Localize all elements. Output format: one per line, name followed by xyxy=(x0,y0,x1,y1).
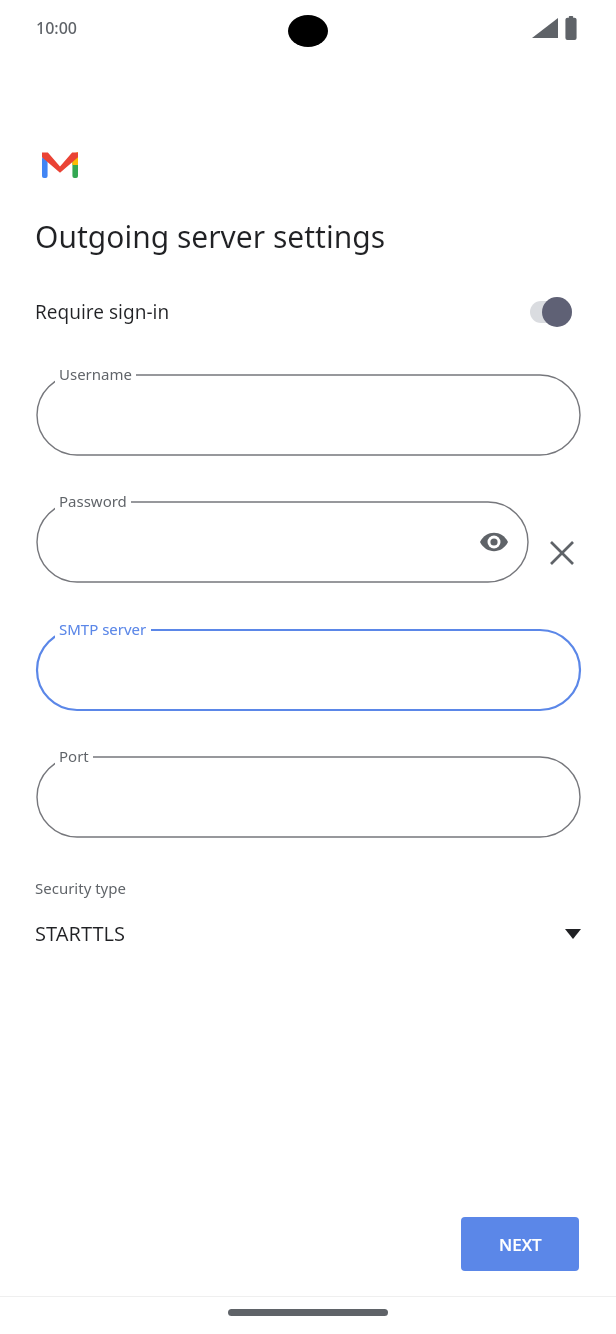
button[interactable]: SMTP server xyxy=(37,630,580,710)
button[interactable]: Password xyxy=(37,502,528,582)
staticText: Require sign-in xyxy=(35,299,170,325)
button[interactable]: Clear password xyxy=(540,531,584,575)
staticText: Port xyxy=(59,746,89,766)
staticText: NEXT xyxy=(499,1233,542,1256)
staticText: 10:00 xyxy=(36,17,77,39)
button[interactable]: NEXT xyxy=(461,1217,579,1271)
staticText: Password xyxy=(59,491,127,511)
button[interactable]: Security type xyxy=(0,868,616,961)
button[interactable]: Require sign-in xyxy=(0,286,616,338)
button[interactable]: Show password xyxy=(472,520,516,564)
button[interactable]: Username xyxy=(37,375,580,455)
staticText: SMTP server xyxy=(59,619,147,639)
staticText: STARTTLS xyxy=(35,920,126,947)
staticText: Security type xyxy=(35,878,126,898)
button[interactable]: Port xyxy=(37,757,580,837)
staticText: Outgoing server settings xyxy=(35,216,386,257)
staticText: Username xyxy=(59,364,132,384)
